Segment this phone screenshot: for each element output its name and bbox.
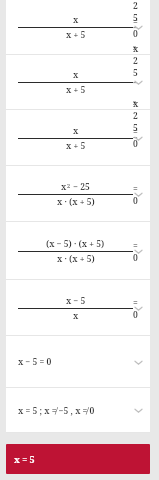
staticText: x = 5	[14, 453, 35, 465]
button[interactable]: x − 5	[6, 280, 150, 336]
button[interactable]: x	[6, 55, 150, 110]
staticText: x · (x + 5)	[57, 253, 95, 265]
button[interactable]: x − 5 = 0	[6, 336, 150, 388]
button[interactable]: x	[6, 0, 150, 55]
staticText: x − 5 = 0	[18, 356, 52, 368]
staticText: − 25	[71, 181, 90, 193]
staticText: x − 5	[66, 295, 86, 307]
other: Expand step	[133, 22, 144, 33]
staticText: x · (x + 5)	[57, 196, 95, 208]
staticText: x = 5 ; x ≠ −5 , x ≠ 0	[18, 405, 95, 417]
staticText: 2	[67, 182, 71, 189]
button[interactable]: x	[6, 110, 150, 166]
staticText: x	[73, 69, 79, 81]
other: Expand step	[133, 189, 144, 200]
other: Expand step	[133, 303, 144, 314]
staticText: x	[73, 310, 79, 322]
other: Expand step	[133, 405, 144, 416]
other: Expand step	[133, 357, 144, 368]
staticText: x + 5	[66, 29, 86, 41]
staticText: x	[73, 14, 79, 26]
button[interactable]: x = 5	[6, 444, 150, 474]
button[interactable]: (x − 5) · (x + 5)	[6, 222, 150, 280]
staticText: x	[61, 181, 67, 193]
other: Expand step	[133, 133, 144, 144]
staticText: x + 5	[66, 84, 86, 96]
staticText: (x − 5) · (x + 5)	[46, 238, 105, 250]
button[interactable]: x = 5 ; x ≠ −5 , x ≠ 0	[6, 388, 150, 433]
other: Expand step	[133, 246, 144, 257]
other: Expand step	[133, 77, 144, 88]
staticText: x + 5	[66, 140, 86, 152]
staticText: x	[73, 125, 79, 137]
button[interactable]: x	[6, 166, 150, 222]
